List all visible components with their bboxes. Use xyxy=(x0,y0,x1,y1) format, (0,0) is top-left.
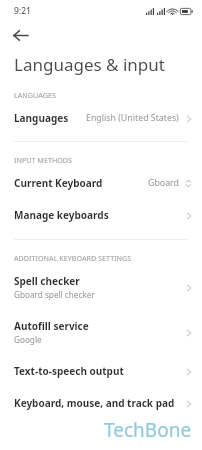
staticText: Gboard xyxy=(148,177,179,189)
staticText: Gboard spell checker xyxy=(14,289,95,300)
staticText: Languages & input xyxy=(14,53,165,76)
staticText: 9:21 xyxy=(14,5,31,17)
button[interactable]: Manage keyboards xyxy=(0,203,202,227)
staticText: INPUT METHODS xyxy=(14,155,73,165)
button[interactable]: Autofill service xyxy=(0,314,202,350)
staticText: Manage keyboards xyxy=(14,208,109,222)
button[interactable]: Languages xyxy=(0,106,202,130)
staticText: Languages xyxy=(14,111,69,125)
button[interactable]: Back xyxy=(8,23,32,47)
button[interactable]: Keyboard, mouse, and track pad xyxy=(0,391,202,415)
staticText: Spell checker xyxy=(14,274,80,288)
button[interactable]: Current Keyboard xyxy=(0,171,202,195)
staticText: Current Keyboard xyxy=(14,176,103,190)
staticText: LANGUAGES xyxy=(14,90,56,100)
button[interactable]: Spell checker xyxy=(0,269,202,305)
staticText: Keyboard, mouse, and track pad xyxy=(14,396,175,410)
staticText: TechBone xyxy=(104,417,192,443)
staticText: ADDITIONAL KEYBOARD SETTINGS xyxy=(14,253,132,263)
staticText: Autofill service xyxy=(14,319,89,333)
staticText: Google xyxy=(14,334,42,345)
staticText: English (United States) xyxy=(86,112,179,124)
staticText: Text-to-speech output xyxy=(14,364,124,378)
button[interactable]: Text-to-speech output xyxy=(0,359,202,383)
